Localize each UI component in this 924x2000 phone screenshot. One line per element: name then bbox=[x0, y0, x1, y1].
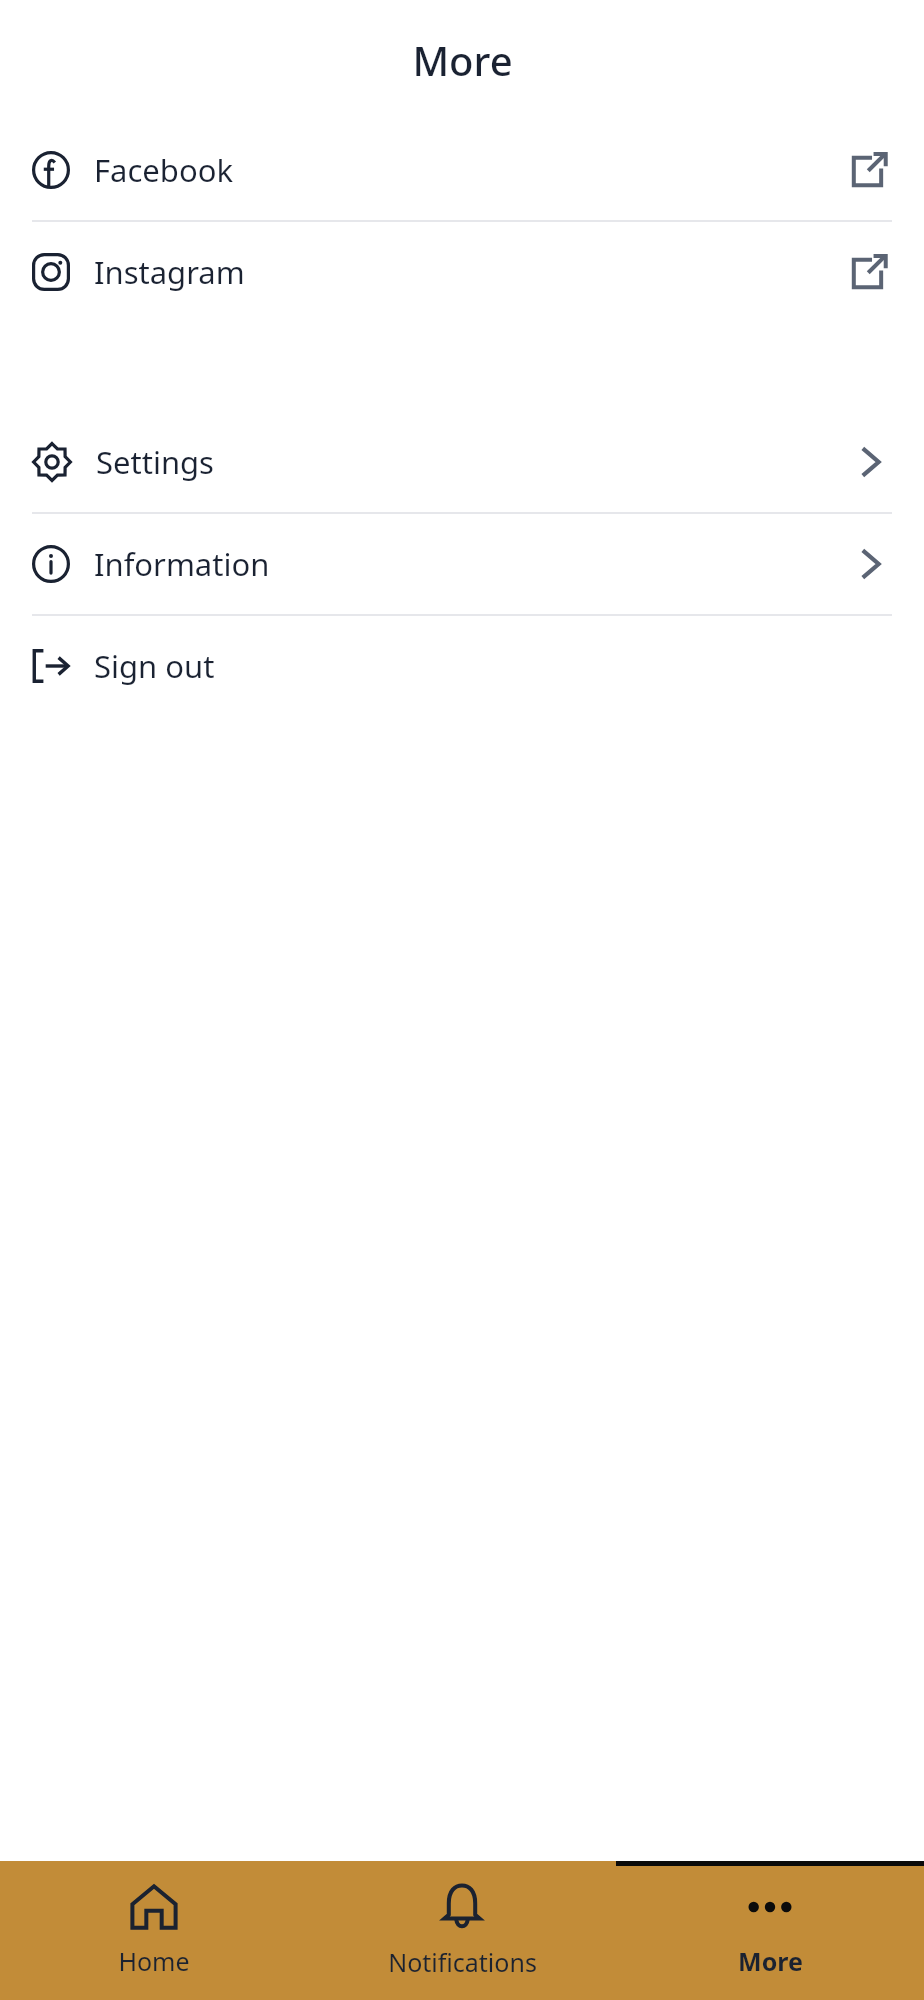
other: Settings bbox=[852, 444, 888, 480]
staticText: Home bbox=[118, 1944, 190, 1978]
staticText: Instagram bbox=[94, 251, 245, 293]
other: Open Facebook bbox=[850, 151, 888, 189]
other: Information bbox=[852, 546, 888, 582]
button[interactable]: Home bbox=[0, 1861, 308, 2000]
button[interactable]: Instagram bbox=[0, 222, 924, 322]
staticText: More bbox=[738, 1944, 803, 1978]
button[interactable]: Sign out bbox=[0, 616, 924, 716]
staticText: Facebook bbox=[94, 149, 233, 191]
button[interactable]: Settings bbox=[0, 412, 924, 512]
other: Home bbox=[130, 1884, 178, 1930]
other: Notifications bbox=[440, 1883, 484, 1931]
staticText: Settings bbox=[96, 441, 214, 483]
button[interactable]: Information bbox=[0, 514, 924, 614]
staticText: More bbox=[412, 33, 513, 87]
button[interactable]: More bbox=[616, 1861, 924, 2000]
button[interactable]: Notifications bbox=[308, 1861, 616, 2000]
staticText: Information bbox=[94, 543, 270, 585]
other: Open Instagram bbox=[850, 253, 888, 291]
other: More bbox=[746, 1884, 794, 1930]
staticText: Notifications bbox=[388, 1945, 537, 1979]
button[interactable]: Facebook bbox=[0, 120, 924, 220]
staticText: Sign out bbox=[94, 645, 215, 687]
